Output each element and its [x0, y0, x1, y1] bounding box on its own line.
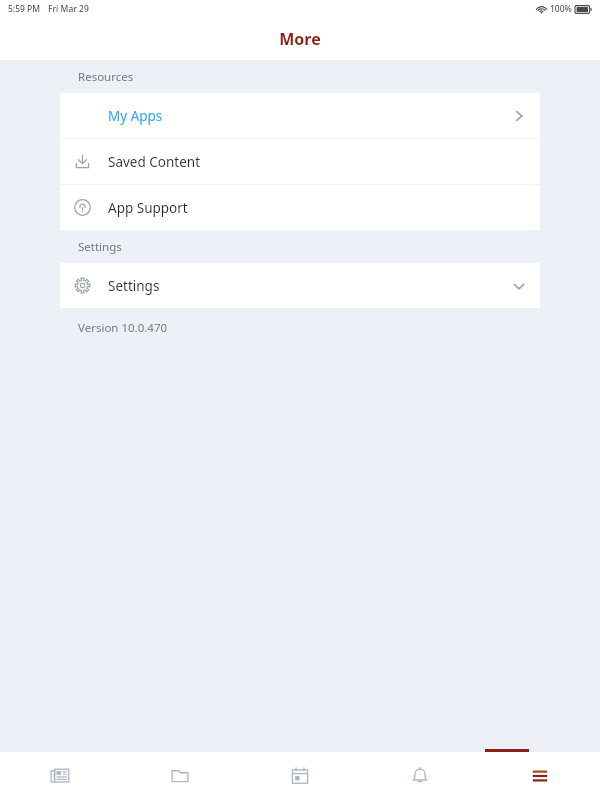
button[interactable]: Notifications [360, 752, 480, 800]
button[interactable]: My Apps [60, 93, 540, 138]
staticText: Settings [108, 277, 160, 295]
staticText: App Support [108, 199, 188, 217]
button[interactable]: Calendar [240, 752, 360, 800]
staticText: Fri Mar 29 [48, 3, 89, 15]
staticText: 100% [550, 3, 572, 15]
staticText: Resources [78, 69, 134, 85]
button[interactable]: App Support [60, 185, 540, 230]
button[interactable]: Files [120, 752, 240, 800]
staticText: Saved Content [108, 153, 201, 171]
button[interactable]: Settings [60, 263, 540, 308]
button[interactable]: Saved Content [60, 139, 540, 184]
staticText: 5:59 PM [8, 3, 41, 15]
staticText: Settings [78, 239, 122, 255]
staticText: More [279, 28, 321, 50]
staticText: My Apps [108, 107, 163, 125]
button[interactable]: News [0, 752, 120, 800]
staticText: Version 10.0.470 [78, 320, 168, 336]
button[interactable]: More [480, 752, 600, 800]
